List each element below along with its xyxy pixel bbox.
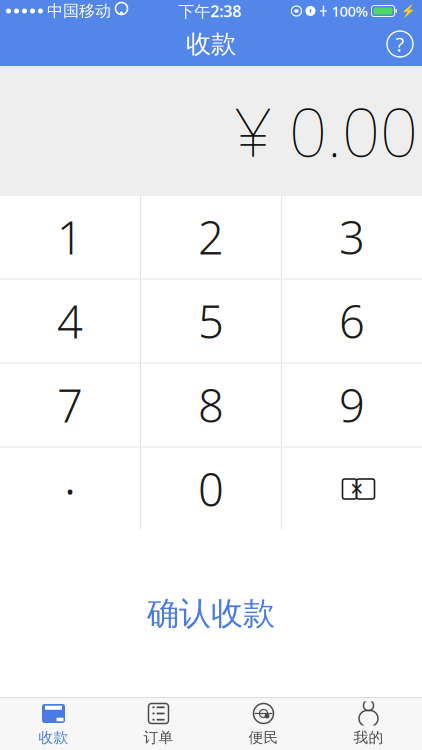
staticText: ✕ (349, 479, 364, 499)
staticText: 订单 (143, 728, 173, 746)
button[interactable]: 收款 (1, 698, 106, 750)
staticText: · (63, 454, 76, 524)
staticText: ¥ 0.00 (234, 87, 418, 175)
button[interactable]: 便民 (211, 698, 316, 750)
staticText: 1 (57, 207, 83, 267)
button[interactable]: 5 (141, 279, 281, 362)
staticText: 便民 (248, 728, 278, 746)
staticText: 8 (198, 375, 224, 435)
button[interactable]: 2 (141, 195, 281, 278)
staticText: ⚡ (401, 4, 416, 18)
button[interactable]: 确认收款 (111, 591, 311, 635)
staticText: 下午2:38 (178, 0, 241, 22)
button[interactable]: 0 (141, 447, 281, 530)
staticText: 中国移动 (47, 1, 111, 21)
staticText: 9 (339, 375, 365, 435)
staticText: 2 (198, 207, 224, 267)
staticText: 收款 (186, 28, 236, 59)
staticText: 5 (198, 291, 224, 351)
staticText: 4 (57, 291, 83, 351)
staticText: 3 (339, 207, 365, 267)
button[interactable]: 8 (141, 363, 281, 446)
staticText: ? (395, 31, 404, 57)
staticText: 我的 (353, 728, 383, 746)
staticText: 6 (339, 291, 365, 351)
staticText: 7 (57, 375, 83, 435)
button[interactable]: 我的 (316, 698, 421, 750)
button[interactable]: Help (378, 22, 422, 66)
staticText: 100% (331, 1, 367, 21)
button[interactable]: 订单 (106, 698, 211, 750)
button[interactable]: 6 (282, 279, 422, 362)
button[interactable]: 3 (282, 195, 422, 278)
button[interactable]: Delete (282, 447, 422, 530)
staticText: 收款 (38, 728, 68, 746)
button[interactable]: 1 (0, 195, 140, 278)
button[interactable]: 7 (0, 363, 140, 446)
staticText: 0 (198, 459, 224, 519)
staticText: 确认收款 (147, 594, 275, 633)
button[interactable]: 9 (282, 363, 422, 446)
button[interactable]: 4 (0, 279, 140, 362)
button[interactable]: · (0, 447, 140, 530)
